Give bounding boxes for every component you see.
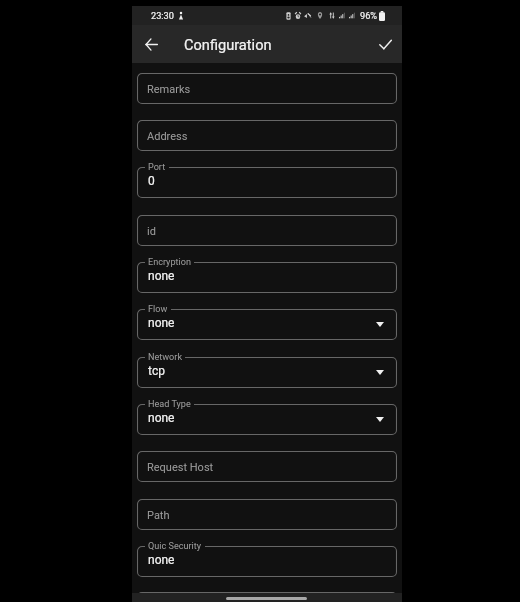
staticText: Remarks [147, 83, 191, 96]
staticText: tcp [148, 364, 165, 378]
staticText: none [148, 411, 175, 425]
button[interactable]: id [137, 215, 397, 246]
button[interactable]: Network [137, 357, 397, 388]
staticText: Port [148, 162, 166, 173]
button[interactable]: Flow [137, 309, 397, 340]
staticText: Configuration [184, 36, 272, 53]
staticText: Flow [148, 304, 168, 315]
button[interactable]: Path [137, 499, 397, 530]
button[interactable] [137, 592, 397, 600]
staticText: Network [148, 352, 182, 363]
staticText: Encryption [148, 257, 191, 268]
button[interactable]: Back [139, 32, 163, 56]
staticText: Address [147, 130, 188, 143]
staticText: 0 [148, 174, 155, 188]
staticText: id [147, 225, 156, 238]
button[interactable]: Remarks [137, 73, 397, 104]
button[interactable]: Save [373, 32, 397, 56]
staticText: 96% [360, 10, 378, 21]
button[interactable]: Request Host [137, 451, 397, 482]
staticText: Path [147, 509, 170, 522]
staticText: none [148, 553, 175, 567]
button[interactable]: Encryption [137, 262, 397, 293]
staticText: none [148, 316, 175, 330]
staticText: Quic Security [148, 541, 202, 552]
staticText: Head Type [148, 399, 191, 410]
staticText: Request Host [147, 461, 214, 474]
button[interactable]: Quic Security [137, 546, 397, 577]
button[interactable]: Head Type [137, 404, 397, 435]
staticText: 23:30 [151, 10, 174, 21]
staticText: none [148, 269, 175, 283]
button[interactable]: Address [137, 120, 397, 151]
button[interactable]: Port [137, 167, 397, 198]
